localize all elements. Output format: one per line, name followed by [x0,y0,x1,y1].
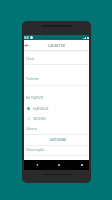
staticText: Observação [26,148,44,152]
button[interactable]: Home [56,162,62,168]
staticText: Paciente [26,77,39,81]
staticText: ADICIONAR [50,138,67,142]
staticText: Título [26,57,35,61]
button[interactable]: GLÂNDULA [24,104,89,113]
button[interactable]: Back [34,162,40,168]
staticText: PACIENTE [33,117,47,121]
button[interactable]: Back [23,42,29,48]
button[interactable]: ADICIONAR [24,135,89,145]
staticText: Gênero [26,127,38,131]
staticText: 9:41 [24,36,30,40]
button[interactable]: Recent apps [79,162,85,168]
staticText: GLÂNDULA [33,107,49,111]
button[interactable]: Back [24,40,89,50]
staticText: CADASTRO [48,43,66,47]
button[interactable]: PACIENTE [24,114,89,123]
staticText: NA PLAYLIST [26,96,44,100]
